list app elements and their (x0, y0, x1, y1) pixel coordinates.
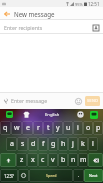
staticText: English (45, 112, 60, 118)
button[interactable]: m (78, 153, 88, 167)
button[interactable]: t (43, 121, 53, 135)
staticText: h (61, 139, 66, 149)
staticText: b (61, 155, 66, 165)
button[interactable]: Backspace (88, 153, 103, 167)
button[interactable]: d (28, 137, 38, 151)
button[interactable]: o (83, 121, 93, 135)
staticText: Enter message (11, 97, 48, 104)
staticText: m (80, 155, 87, 165)
button[interactable]: x (27, 153, 38, 167)
button[interactable]: s (17, 137, 28, 151)
staticText: p (96, 123, 101, 133)
button[interactable]: i (73, 121, 83, 135)
button[interactable]: Numbers (0, 169, 18, 182)
button[interactable]: e (22, 121, 33, 135)
staticText: g (51, 139, 56, 149)
button[interactable]: Attach (0, 92, 11, 109)
button[interactable]: u (63, 121, 73, 135)
staticText: Speed (46, 173, 57, 178)
button[interactable]: w (11, 121, 22, 135)
staticText: e (26, 123, 30, 133)
button[interactable]: Add contact (90, 22, 101, 33)
button[interactable]: Emoji (72, 95, 84, 107)
staticText: q (3, 123, 8, 133)
staticText: w (14, 123, 20, 133)
button[interactable]: r (33, 121, 43, 135)
button[interactable]: n (68, 153, 78, 167)
button[interactable]: Period (73, 169, 84, 182)
button[interactable]: SEND (85, 96, 100, 106)
button[interactable]: h (58, 137, 68, 151)
button[interactable]: Emoji sticker (89, 110, 99, 120)
button[interactable]: y (53, 121, 63, 135)
staticText: New message (14, 10, 55, 18)
staticText: c (41, 155, 45, 165)
staticText: k (81, 139, 85, 149)
staticText: l (92, 139, 94, 149)
button[interactable]: v (48, 153, 58, 167)
staticText: Enter recipients (4, 24, 43, 31)
staticText: 12:51 (88, 1, 100, 7)
staticText: d (31, 139, 36, 149)
button[interactable]: a (6, 137, 17, 151)
button[interactable]: g (48, 137, 58, 151)
staticText: v (51, 155, 55, 165)
button[interactable]: q (0, 121, 11, 135)
button[interactable]: c (38, 153, 48, 167)
staticText: 95% (75, 2, 83, 7)
staticText: a (10, 139, 14, 149)
staticText: i (77, 123, 79, 133)
staticText: o (86, 123, 91, 133)
button[interactable]: b (58, 153, 68, 167)
staticText: Next (89, 173, 98, 178)
staticText: 123? (4, 173, 14, 179)
button[interactable]: p (93, 121, 103, 135)
button[interactable]: f (38, 137, 48, 151)
button[interactable]: Shirt sticker (22, 110, 31, 119)
button[interactable]: l (88, 137, 98, 151)
staticText: SEND (87, 98, 99, 104)
button[interactable]: Emoji keyboard (18, 169, 29, 182)
button[interactable]: Sticker (5, 110, 14, 119)
staticText: y (56, 123, 60, 133)
staticText: x (31, 155, 35, 165)
button[interactable]: Gif (76, 110, 85, 119)
button[interactable]: Shift (0, 153, 16, 167)
staticText: n (71, 155, 76, 165)
staticText: f (42, 139, 45, 149)
staticText: t (47, 123, 50, 133)
button[interactable]: Back (0, 7, 14, 20)
staticText: . (78, 172, 80, 179)
button[interactable]: k (78, 137, 88, 151)
staticText: s (21, 139, 25, 149)
button[interactable]: j (68, 137, 78, 151)
staticText: j (72, 139, 74, 149)
button[interactable]: Next (84, 169, 103, 182)
button[interactable]: Space (29, 169, 73, 182)
staticText: u (66, 123, 71, 133)
button[interactable]: z (16, 153, 27, 167)
staticText: r (37, 123, 40, 133)
staticText: z (20, 155, 24, 165)
